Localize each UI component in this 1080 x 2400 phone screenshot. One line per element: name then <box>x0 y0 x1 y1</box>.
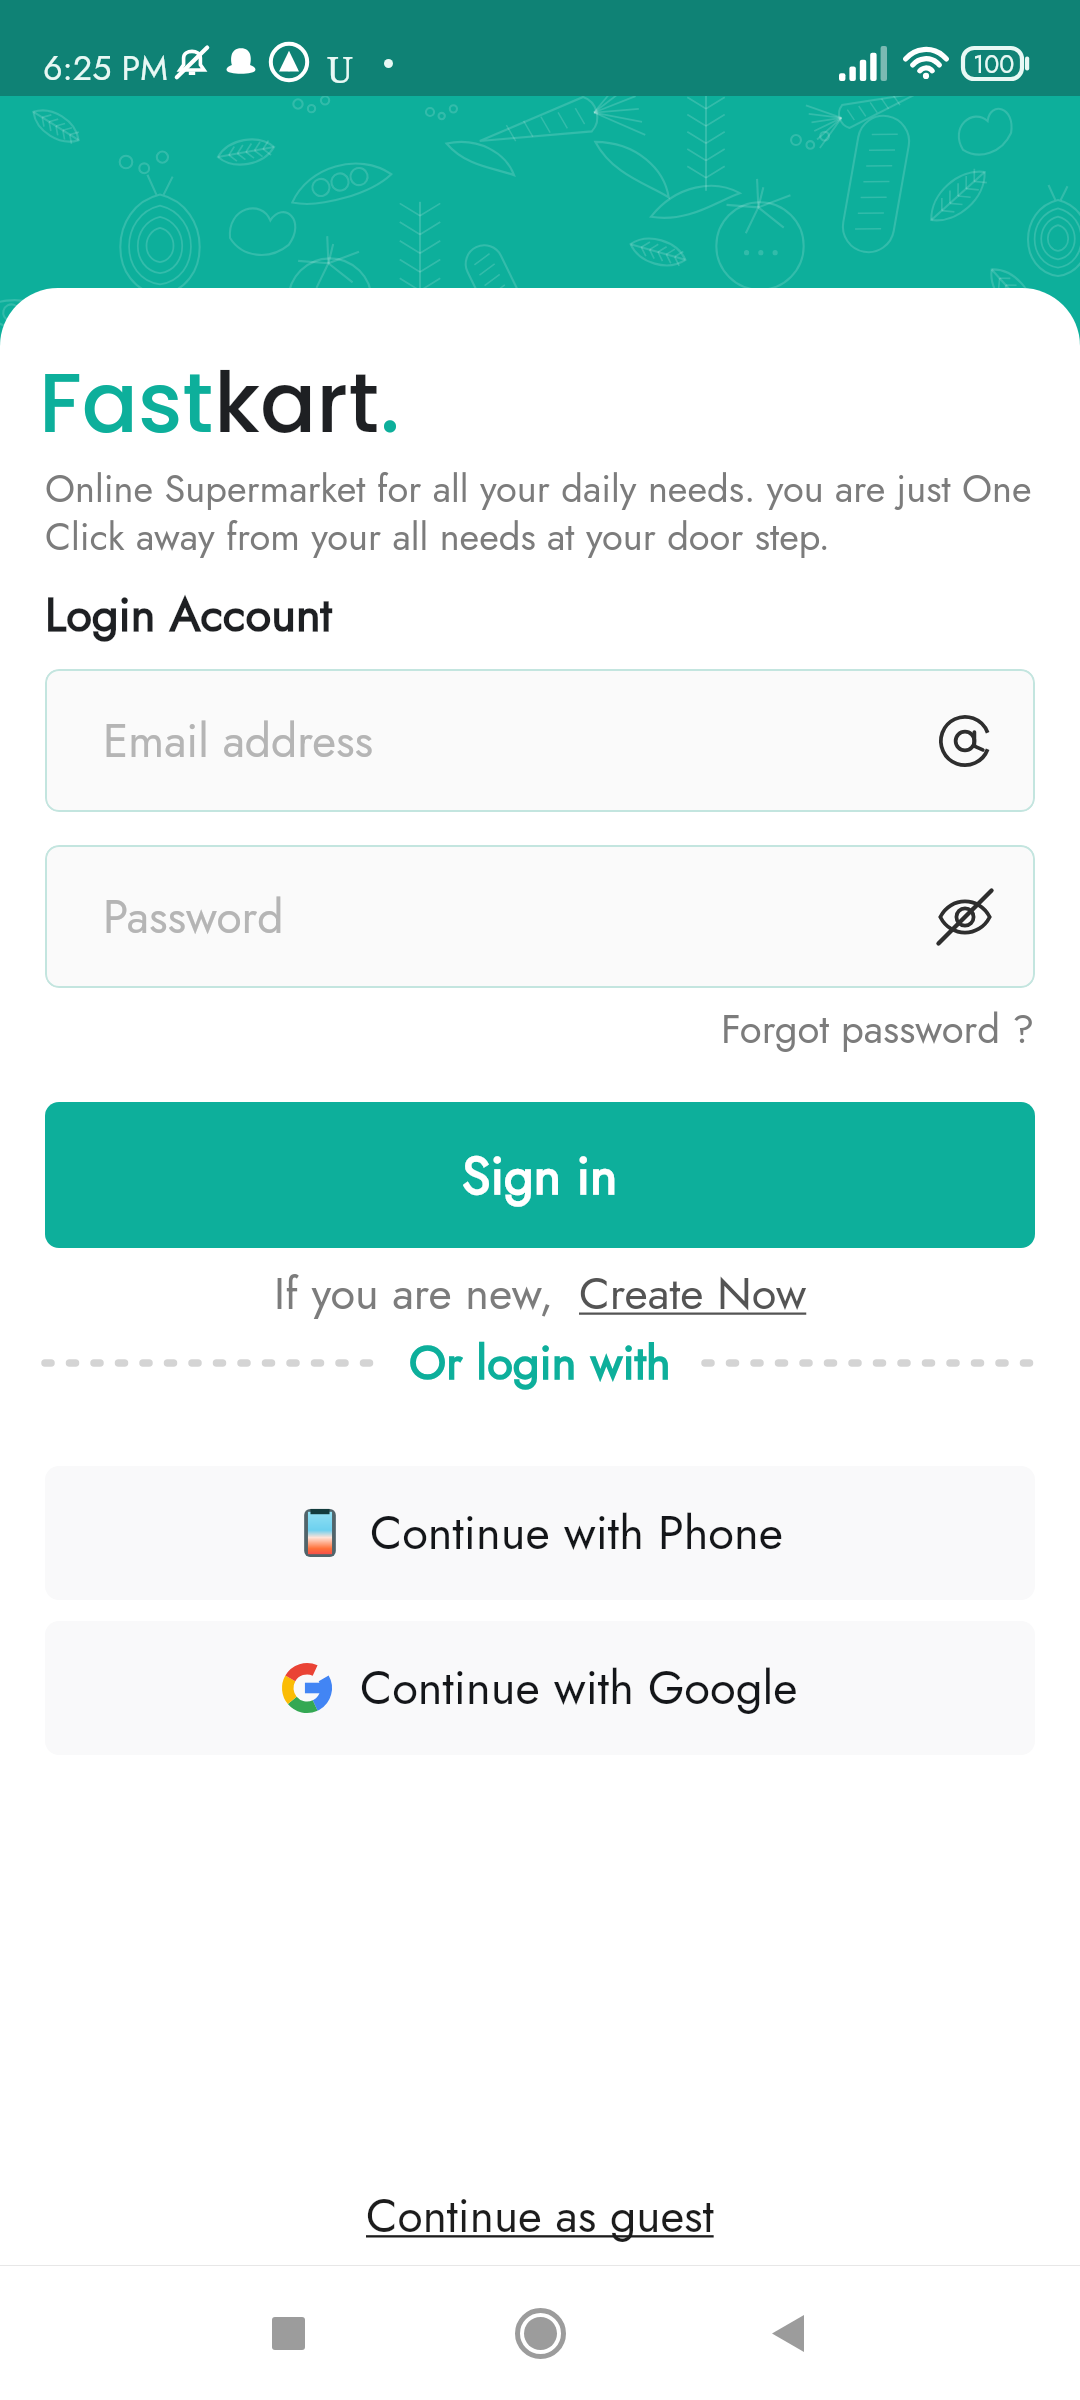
staticText: If you are new, <box>274 1261 567 1326</box>
staticText: Password <box>103 884 284 950</box>
button[interactable]: Home <box>414 2278 666 2388</box>
staticText: Email address <box>103 708 374 774</box>
staticText: Login Account <box>45 581 332 649</box>
button[interactable]: Create Now <box>579 1261 807 1326</box>
button[interactable]: Password <box>45 845 1035 988</box>
staticText: 6:25 PM <box>43 44 168 93</box>
button[interactable]: Continue with Phone <box>45 1466 1035 1600</box>
staticText: Sign in <box>462 1138 618 1213</box>
button[interactable]: Email address <box>45 669 1035 812</box>
staticText: . <box>380 345 401 461</box>
button[interactable]: Sign in <box>45 1102 1035 1248</box>
staticText: U <box>327 45 353 94</box>
staticText: Fast <box>39 345 214 461</box>
staticText: 100 <box>973 46 1015 81</box>
button[interactable]: Continue as guest <box>346 2169 734 2263</box>
button[interactable]: Forgot password ? <box>721 994 1035 1064</box>
staticText: Continue with Phone <box>370 1499 783 1567</box>
staticText: kart <box>214 345 380 461</box>
button[interactable]: Continue with Google <box>45 1621 1035 1755</box>
button[interactable]: Recent apps <box>162 2278 414 2388</box>
staticText: Or login with <box>409 1329 671 1397</box>
staticText: Continue with Google <box>360 1654 798 1722</box>
staticText: Online Supermarket for all your daily ne… <box>45 461 1040 565</box>
button[interactable]: Back <box>666 2278 918 2388</box>
